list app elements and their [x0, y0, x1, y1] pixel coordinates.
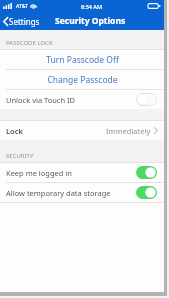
staticText: Lock [6, 126, 106, 136]
staticText: Settings [9, 16, 40, 27]
other: Toggle on [136, 186, 157, 199]
staticText: PASSCODE LOCK [6, 39, 53, 47]
staticText: Immediately [106, 126, 151, 136]
button[interactable]: Settings [0, 13, 45, 30]
staticText: Unlock via Touch ID [6, 95, 136, 105]
other: Toggle off [136, 93, 157, 106]
button[interactable]: Unlock via Touch ID [0, 90, 164, 109]
button[interactable]: Turn Passcode Off [0, 50, 164, 69]
staticText: Allow temporary data storage [6, 188, 136, 198]
staticText: AT&T [16, 3, 28, 10]
staticText: Change Passcode [47, 74, 118, 86]
button[interactable]: Allow temporary data storage [0, 183, 164, 202]
other: Toggle on [136, 166, 157, 179]
button[interactable]: Lock [0, 121, 164, 140]
button[interactable]: Change Passcode [0, 70, 164, 89]
staticText: Turn Passcode Off [46, 54, 119, 66]
button[interactable]: Keep me logged in [0, 163, 164, 182]
staticText: 8:54 AM [81, 3, 103, 10]
staticText: Keep me logged in [6, 168, 136, 178]
staticText: SECURITY [6, 152, 34, 160]
staticText: Security Options [55, 15, 126, 27]
